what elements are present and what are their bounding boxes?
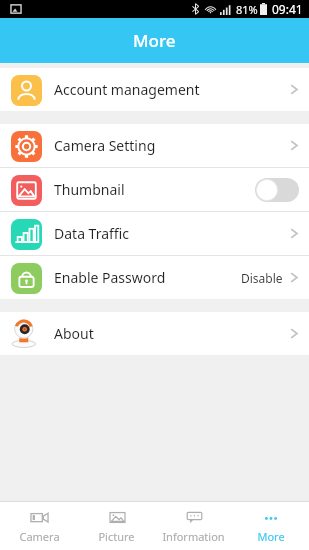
staticText: Information [162,529,225,544]
button[interactable]: Data Traffic [0,212,309,255]
staticText: Thumbnail [54,180,255,199]
button[interactable]: Thumbnail toggle, off [255,178,299,202]
staticText: Account management [54,80,289,99]
button[interactable]: More [232,502,309,550]
button[interactable]: Thumbnail [0,168,309,211]
staticText: Data Traffic [54,224,289,243]
staticText: 81% [236,2,258,17]
staticText: More [133,29,176,52]
staticText: More [257,529,285,544]
button[interactable]: Enable Password [0,256,309,299]
staticText: Camera [19,529,60,544]
button[interactable]: Picture [78,502,155,550]
staticText: Picture [98,529,135,544]
staticText: Enable Password [54,268,241,287]
button[interactable]: Information [155,502,232,550]
button[interactable]: About [0,312,309,355]
staticText: About [54,324,289,343]
staticText: Disable [241,270,283,286]
button[interactable]: Account management [0,68,309,111]
staticText: 09:41 [272,1,303,17]
staticText: Camera Setting [54,136,289,155]
button[interactable]: Camera Setting [0,124,309,167]
button[interactable]: Camera [0,502,78,550]
